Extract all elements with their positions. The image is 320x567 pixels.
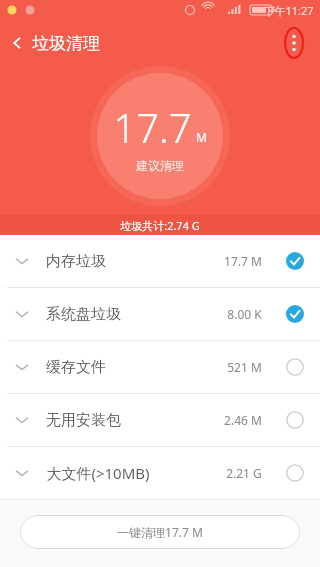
staticText: 大文件(>10MB): [46, 463, 150, 483]
staticText: 一键清理17.7 M: [117, 524, 203, 540]
button[interactable]: Not selected: [280, 352, 310, 382]
staticText: 系统盘垃圾: [46, 305, 121, 324]
button[interactable]: Not selected: [280, 458, 310, 488]
button[interactable]: 一键清理17.7 M: [20, 515, 300, 549]
staticText: 521 M: [227, 359, 262, 375]
button[interactable]: 系统盘垃圾: [0, 288, 320, 340]
button[interactable]: More options: [274, 23, 314, 63]
button[interactable]: Selected: [280, 246, 310, 276]
button[interactable]: Not selected: [280, 405, 310, 435]
staticText: 8.00 K: [227, 306, 262, 322]
staticText: 2.46 M: [224, 412, 262, 428]
button[interactable]: Selected: [280, 299, 310, 329]
button[interactable]: 无用安装包: [0, 394, 320, 446]
button[interactable]: 内存垃圾: [0, 235, 320, 287]
staticText: 建议清理: [136, 158, 184, 173]
staticText: 17.7 M: [224, 253, 262, 269]
staticText: 无用安装包: [46, 411, 121, 430]
button[interactable]: 缓存文件: [0, 341, 320, 393]
staticText: 2.21 G: [226, 465, 262, 481]
staticText: 垃圾清理: [32, 33, 100, 54]
staticText: 缓存文件: [46, 358, 106, 377]
button[interactable]: Back: [0, 28, 32, 58]
staticText: 下午11:27: [263, 3, 314, 18]
button[interactable]: 大文件(>10MB): [0, 447, 320, 499]
staticText: 垃圾共计:2.74 G: [120, 218, 200, 233]
staticText: 17.7: [113, 100, 192, 154]
staticText: 内存垃圾: [46, 252, 106, 271]
staticText: M: [196, 129, 207, 145]
